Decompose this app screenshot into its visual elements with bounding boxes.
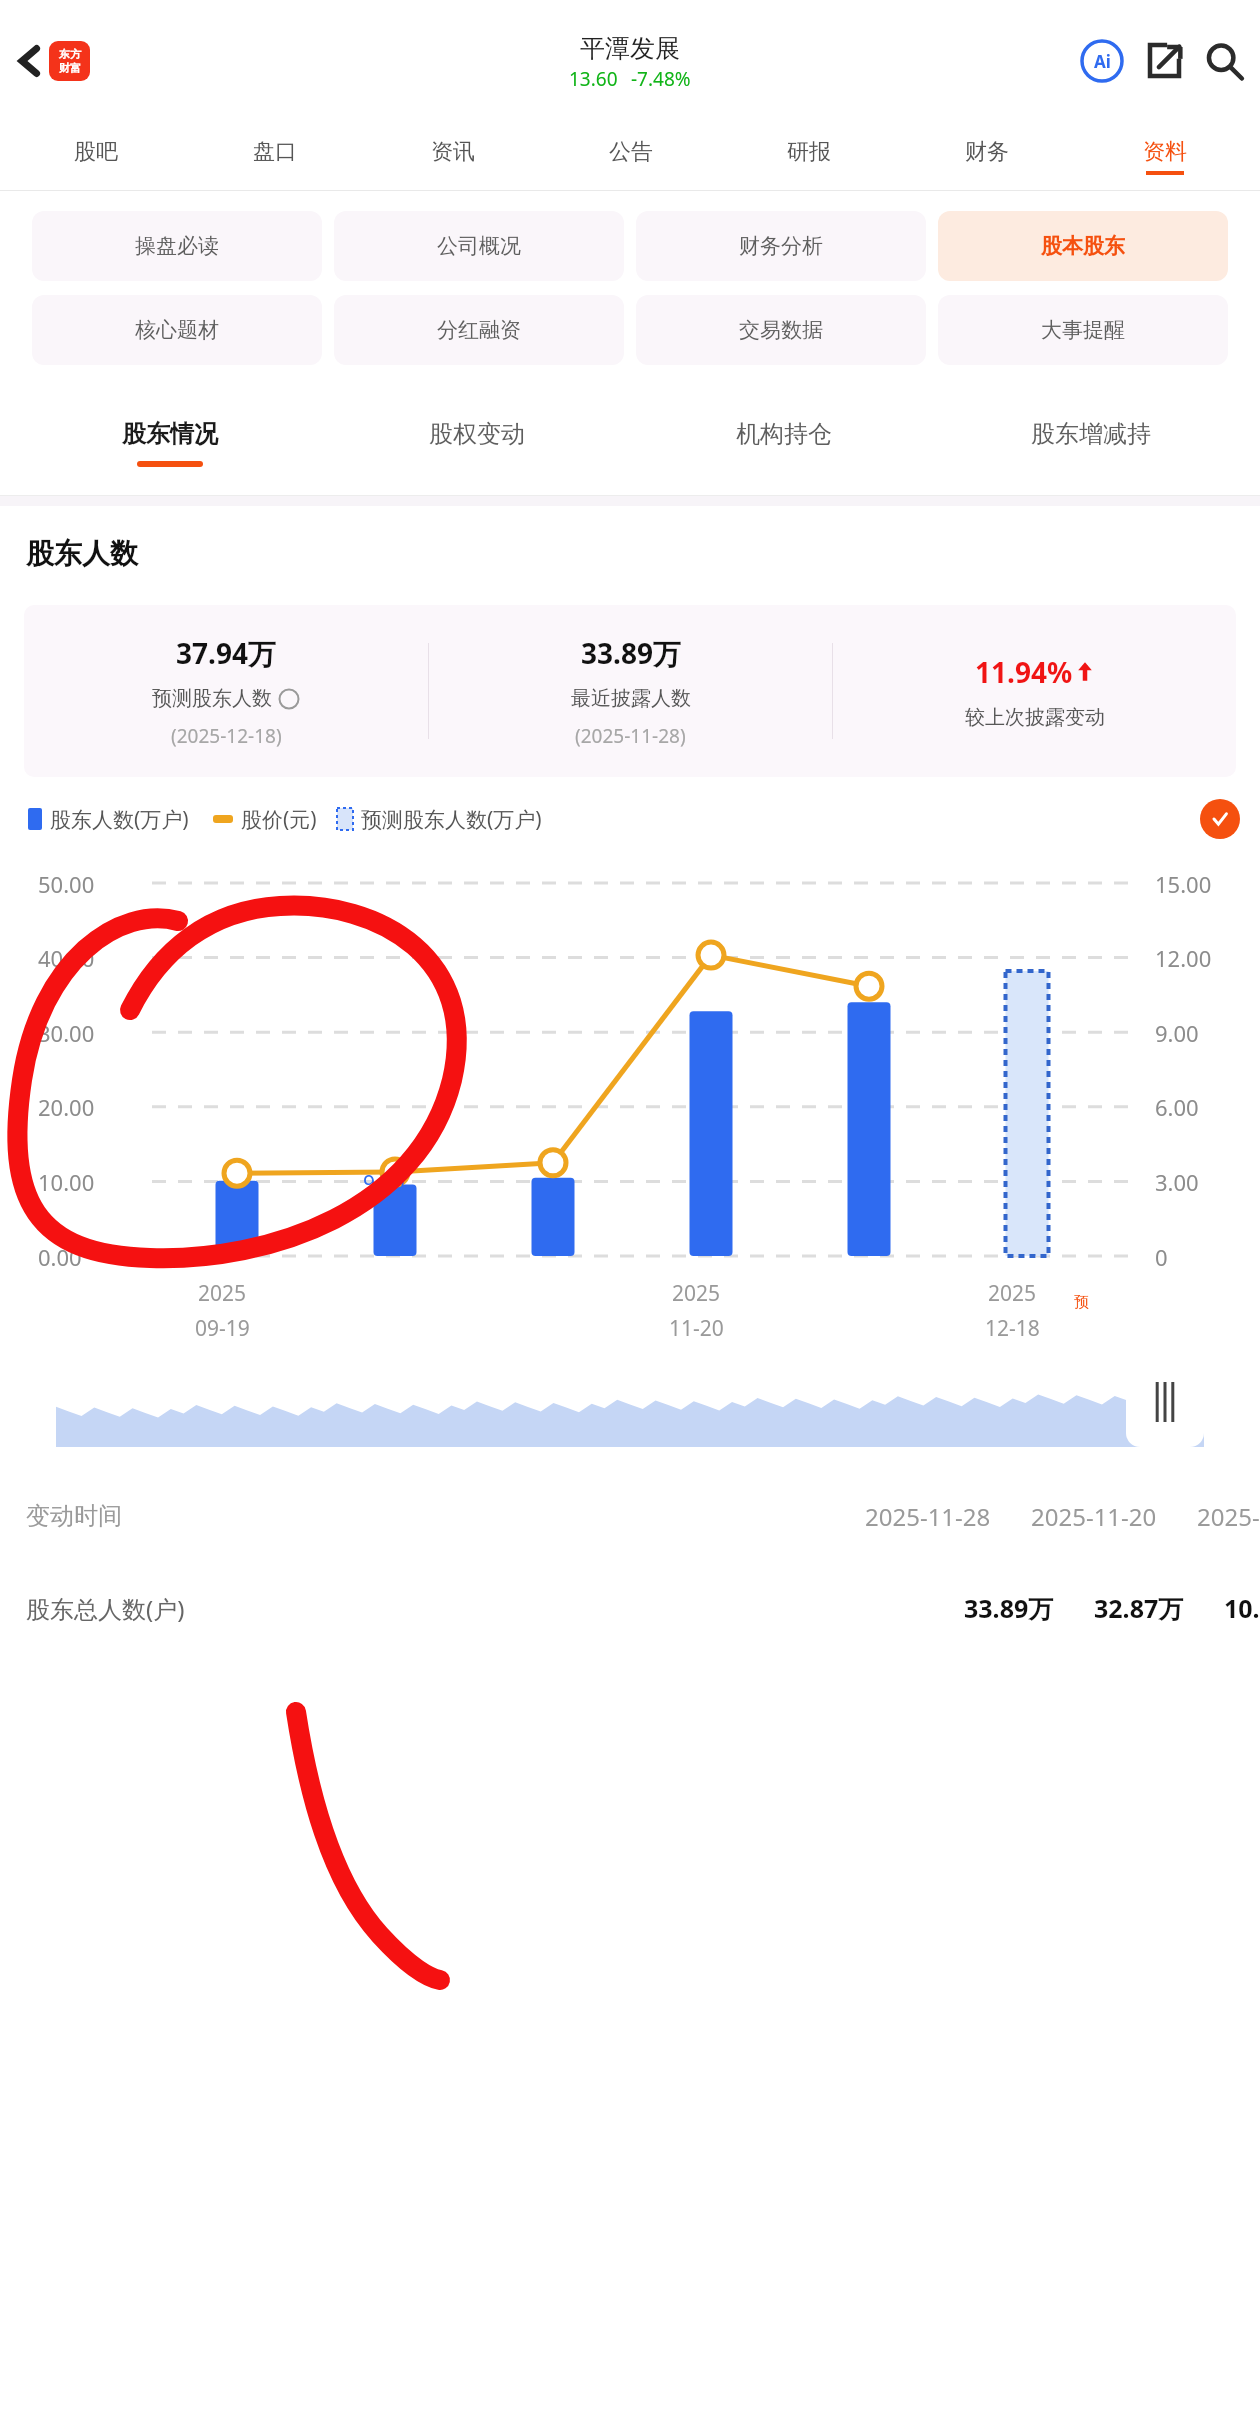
button[interactable]: Toggle series [1200,799,1240,839]
staticText: 股权变动 [429,419,525,449]
staticText: 9.00 [1155,1018,1199,1048]
staticText: 财务 [965,138,1009,166]
staticText: 股东人数(万户) [50,805,189,834]
staticText: 10. [1224,1591,1260,1625]
staticText: 股东总人数(户) [26,1592,185,1625]
staticText: 09-19 [195,1314,250,1343]
staticText: 11.94% [975,653,1073,691]
staticText: 核心题材 [135,317,219,343]
button[interactable]: 股本股东 [938,211,1228,281]
staticText: 机构持仓 [736,419,832,449]
button[interactable]: 股东情况 [16,391,323,495]
staticText: 2025- [1197,1500,1260,1533]
button[interactable]: 研报 [720,122,898,190]
button[interactable]: 11.94% [833,605,1236,777]
button[interactable]: 股权变动 [323,391,630,495]
staticText: 32.87万 [1094,1591,1184,1625]
button[interactable]: 公司概况 [334,211,624,281]
staticText: 0 [1155,1242,1168,1272]
button[interactable]: 机构持仓 [630,391,937,495]
button[interactable]: 分红融资 [334,295,624,365]
button[interactable]: 核心题材 [32,295,322,365]
staticText: 15.00 [1155,869,1212,899]
button[interactable]: 大事提醒 [938,295,1228,365]
button[interactable]: AI assistant [1076,35,1128,87]
button[interactable]: 股吧 [6,122,185,190]
button[interactable]: 交易数据 [636,295,926,365]
staticText: (2025-12-18) [171,723,282,749]
staticText: 30.00 [38,1018,95,1048]
staticText: 股本股东 [1041,233,1125,259]
staticText: 东方 [59,47,81,61]
button[interactable]: 公告 [542,122,720,190]
staticText: 盘口 [253,138,297,166]
staticText: 2025 [198,1279,247,1308]
staticText: (2025-11-28) [575,723,686,749]
staticText: 2025-11-20 [1031,1500,1157,1533]
staticText: 33.89万 [964,1591,1054,1625]
staticText: 财富 [59,61,81,75]
button[interactable]: Back [2,34,56,88]
staticText: 平潭发展 [580,33,680,64]
staticText: 变动时间 [26,1501,122,1531]
button[interactable]: Search [1198,35,1250,87]
staticText: Ai [1094,50,1111,73]
staticText: 分红融资 [437,317,521,343]
button[interactable]: East Money [49,41,90,81]
staticText: 0.00 [38,1242,82,1272]
button[interactable]: 操盘必读 [32,211,322,281]
staticText: 较上次披露变动 [965,705,1105,730]
button[interactable]: 股东增减持 [937,391,1244,495]
staticText: 预测股东人数(万户) [361,805,542,834]
staticText: 交易数据 [739,317,823,343]
button[interactable]: 盘口 [185,122,364,190]
staticText: 9.79 [363,1169,405,1198]
staticText: 股价(元) [241,805,317,834]
staticText: 11-20 [669,1314,724,1343]
staticText: 2025 [988,1279,1037,1308]
button[interactable]: 资料 [1076,122,1254,190]
staticText: 40.00 [38,943,95,973]
button[interactable]: Share [1138,35,1190,87]
staticText: 股东增减持 [1031,419,1151,449]
staticText: -7.48% [631,66,691,92]
button[interactable]: 37.94万 [24,605,428,777]
staticText: 预 [1074,1293,1089,1312]
staticText: 资料 [1143,138,1187,166]
staticText: 股东人数 [26,536,138,571]
staticText: 2025-11-28 [865,1500,991,1533]
staticText: 预测股东人数 [152,686,272,711]
button[interactable]: 财务 [898,122,1076,190]
staticText: 资讯 [431,138,475,166]
staticText: 公告 [609,138,653,166]
staticText: 12.00 [1155,943,1212,973]
staticText: 2025 [672,1279,721,1308]
button[interactable]: 33.89万 [429,605,832,777]
button[interactable]: 财务分析 [636,211,926,281]
staticText: 3.00 [1155,1167,1199,1197]
staticText: 12-18 [985,1314,1040,1343]
staticText: 操盘必读 [135,233,219,259]
staticText: 50.00 [38,869,95,899]
staticText: 大事提醒 [1041,317,1125,343]
staticText: 20.00 [38,1092,95,1122]
staticText: 财务分析 [739,233,823,259]
staticText: 6.00 [1155,1092,1199,1122]
staticText: 研报 [787,138,831,166]
button[interactable]: Drag handle [1126,1357,1204,1447]
staticText: 股吧 [74,138,118,166]
staticText: 13.60 [569,66,618,92]
staticText: 股东情况 [122,419,218,449]
staticText: 37.94万 [176,634,276,672]
staticText: 公司概况 [437,233,521,259]
staticText: 33.89万 [581,634,681,672]
staticText: 10.00 [38,1167,95,1197]
button[interactable]: 资讯 [364,122,542,190]
staticText: 最近披露人数 [571,686,691,711]
